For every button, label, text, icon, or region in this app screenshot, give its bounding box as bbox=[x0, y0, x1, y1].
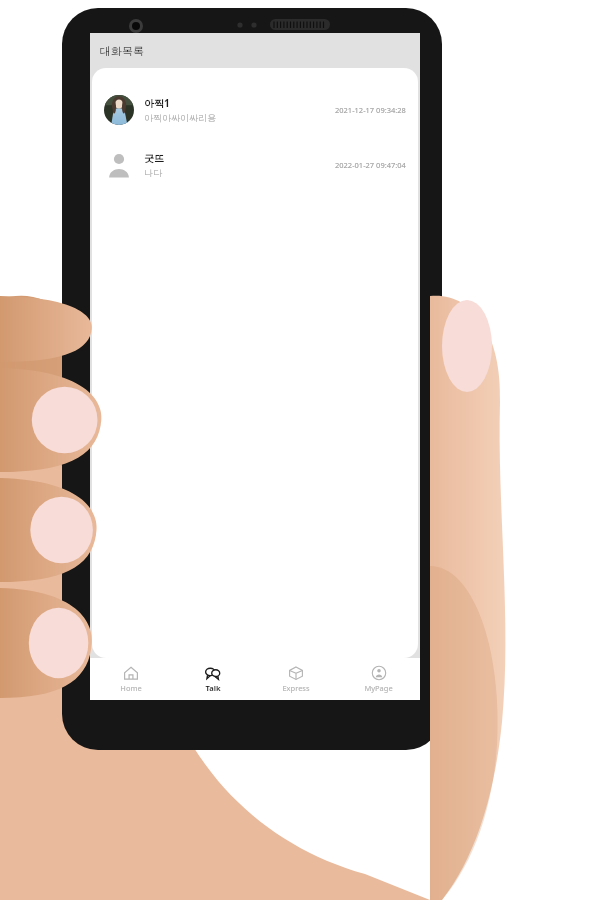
staticText: 아찍1 bbox=[144, 96, 170, 110]
staticText: 대화목록 bbox=[100, 44, 144, 58]
button[interactable]: Talk bbox=[172, 658, 254, 700]
staticText: 아찍아싸이싸리용 bbox=[144, 112, 216, 123]
button[interactable]: 굿뜨 bbox=[92, 137, 418, 192]
staticText: 2021-12-17 09:34:28 bbox=[335, 105, 406, 115]
button[interactable]: Home bbox=[90, 658, 172, 700]
staticText: MyPage bbox=[364, 683, 393, 693]
button[interactable]: MyPage bbox=[337, 658, 420, 700]
staticText: Home bbox=[120, 683, 142, 693]
staticText: 굿뜨 bbox=[144, 152, 164, 165]
staticText: 2022-01-27 09:47:04 bbox=[335, 160, 406, 170]
button[interactable]: Express bbox=[254, 658, 337, 700]
staticText: 나다 bbox=[144, 167, 162, 178]
staticText: Express bbox=[282, 683, 310, 693]
button[interactable]: 아찍1 bbox=[92, 82, 418, 137]
staticText: Talk bbox=[205, 683, 221, 693]
